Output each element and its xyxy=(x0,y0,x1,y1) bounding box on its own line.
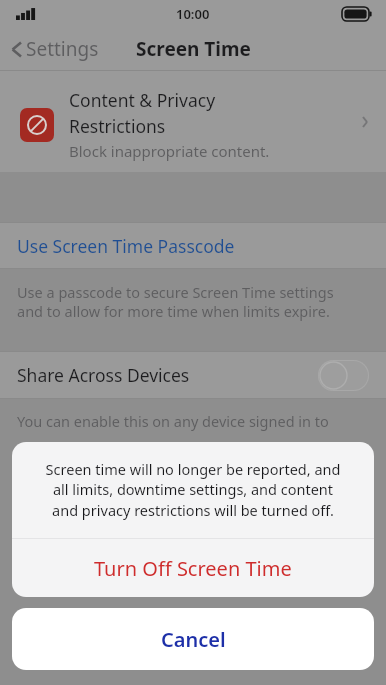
staticText: Screen time will no longer be reported, … xyxy=(28,459,358,521)
staticText: Screen Time xyxy=(136,36,251,62)
staticText: Use Screen Time Passcode xyxy=(17,234,235,258)
staticText: Block inappropriate content. xyxy=(69,141,270,161)
staticText: Use a passcode to secure Screen Time set… xyxy=(17,282,334,321)
button[interactable]: Use Screen Time Passcode xyxy=(0,223,386,268)
staticText: You can enable this on any device signed… xyxy=(17,411,329,431)
staticText: Content & Privacy xyxy=(69,88,216,112)
button[interactable]: Content & Privacy xyxy=(0,71,386,172)
button[interactable]: Share Across Devices xyxy=(0,352,386,398)
staticText: Restrictions xyxy=(69,114,166,138)
staticText: Share Across Devices xyxy=(17,363,190,387)
button[interactable]: Settings xyxy=(0,32,107,66)
staticText: Settings xyxy=(26,36,99,62)
button[interactable]: Turn Off Screen Time xyxy=(12,539,374,597)
button[interactable]: Cancel xyxy=(12,608,374,670)
staticText: Cancel xyxy=(161,626,226,653)
button[interactable]: Share Across Devices toggle xyxy=(318,360,369,391)
staticText: 10:00 xyxy=(176,5,210,23)
staticText: Turn Off Screen Time xyxy=(94,555,292,582)
